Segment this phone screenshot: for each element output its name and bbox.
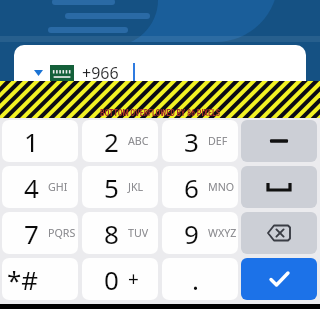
staticText: 8 xyxy=(104,216,119,251)
button[interactable]: Space xyxy=(241,166,317,208)
button[interactable]: Backspace xyxy=(241,212,317,254)
staticText: *# xyxy=(7,262,39,297)
staticText: 1 xyxy=(24,124,39,159)
button[interactable]: *# xyxy=(2,258,78,300)
button[interactable]: +966 xyxy=(14,45,306,101)
staticText: . xyxy=(192,262,199,297)
button[interactable]: 3 xyxy=(162,120,238,162)
staticText: 6 xyxy=(184,170,199,205)
staticText: WXYZ xyxy=(208,226,237,241)
staticText: PQRS xyxy=(48,226,76,241)
staticText: + xyxy=(128,266,139,292)
staticText: GHI xyxy=(48,180,68,195)
staticText: MNO xyxy=(208,180,235,195)
staticText: +966 xyxy=(82,62,119,84)
staticText: 4 xyxy=(24,170,39,205)
staticText: TUV xyxy=(128,226,149,241)
button[interactable]: 5 xyxy=(82,166,158,208)
button[interactable]: 8 xyxy=(82,212,158,254)
staticText: 0 xyxy=(104,262,119,297)
button[interactable]: 2 xyxy=(82,120,158,162)
staticText: 7 xyxy=(24,216,39,251)
button[interactable]: 9 xyxy=(162,212,238,254)
button[interactable]: Dash xyxy=(241,120,317,162)
staticText: JKL xyxy=(128,180,144,195)
staticText: ABC xyxy=(128,134,149,149)
button[interactable]: 4 xyxy=(2,166,78,208)
button[interactable]: 0 xyxy=(82,258,158,300)
staticText: BOTTOM OVERFLOWED BY 86 PIXELS xyxy=(100,108,221,118)
staticText: 2 xyxy=(104,124,119,159)
staticText: 9 xyxy=(184,216,199,251)
button[interactable]: Done xyxy=(241,258,317,300)
staticText: 3 xyxy=(184,124,199,159)
button[interactable]: 1 xyxy=(2,120,78,162)
button[interactable]: 6 xyxy=(162,166,238,208)
staticText: DEF xyxy=(208,134,228,149)
button[interactable]: . xyxy=(162,258,238,300)
button[interactable]: 7 xyxy=(2,212,78,254)
staticText: 5 xyxy=(104,170,119,205)
